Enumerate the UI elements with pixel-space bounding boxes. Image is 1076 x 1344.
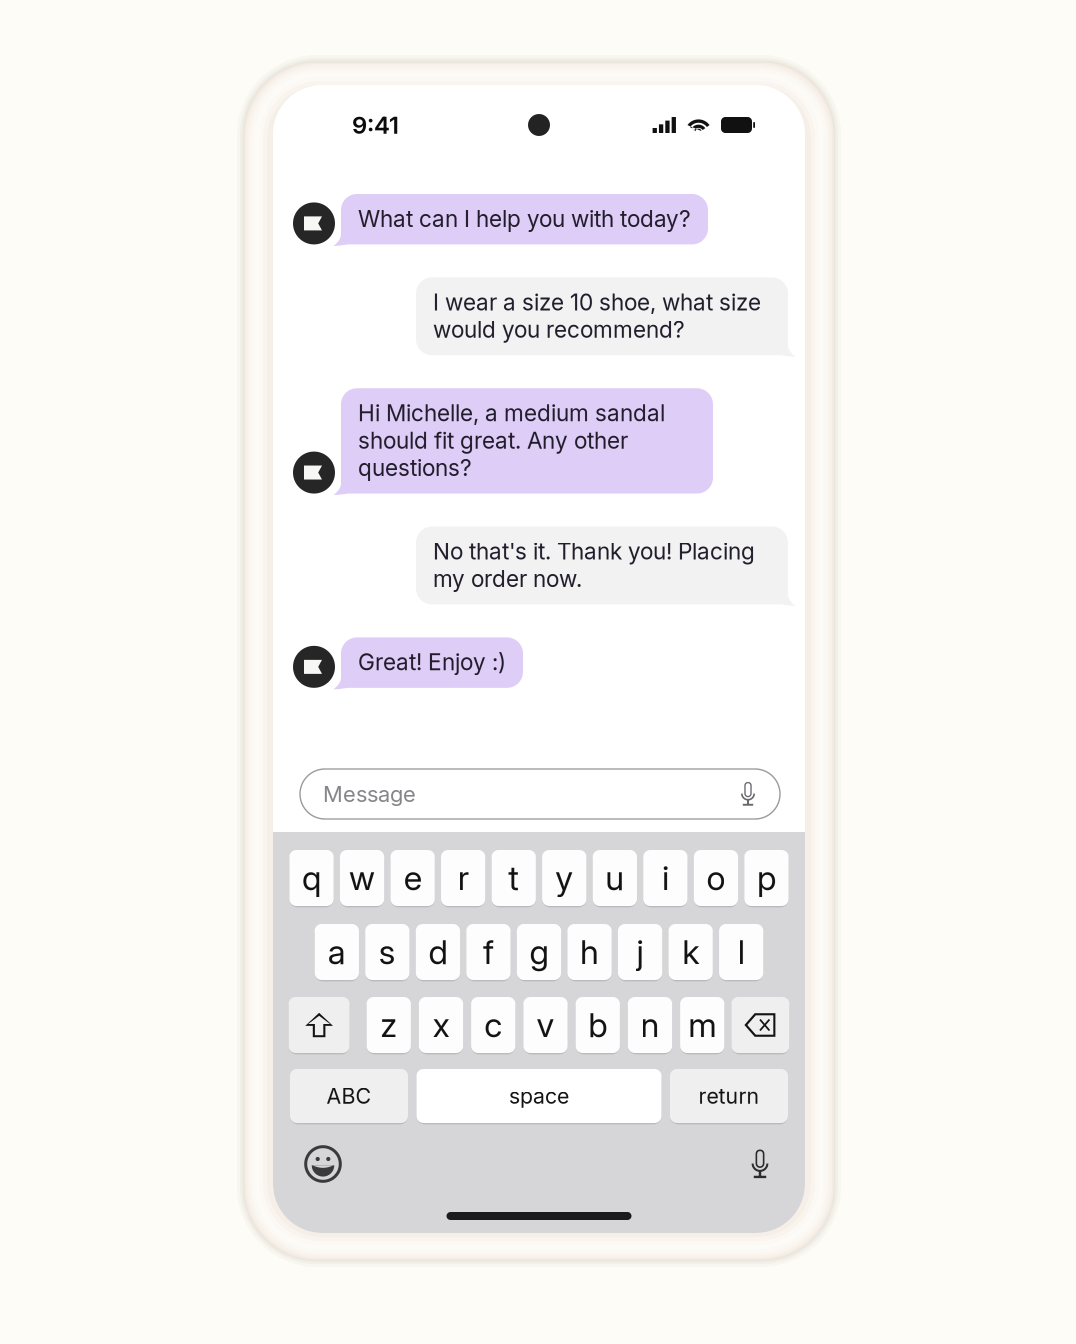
staticText: p <box>757 858 776 898</box>
button[interactable]: d <box>416 924 460 980</box>
staticText: u <box>605 858 624 898</box>
button[interactable]: Backspace <box>731 997 789 1053</box>
staticText: z <box>380 1005 397 1045</box>
staticText: ABC <box>326 1083 371 1109</box>
button[interactable]: s <box>365 924 409 980</box>
staticText: c <box>484 1005 502 1045</box>
staticText: o <box>706 858 725 898</box>
staticText: 9:41 <box>352 110 399 139</box>
button[interactable]: Message <box>300 769 780 819</box>
button[interactable]: t <box>492 850 536 906</box>
button[interactable]: space <box>416 1069 661 1123</box>
button[interactable]: n <box>628 997 672 1053</box>
button[interactable]: y <box>542 850 586 906</box>
button[interactable]: f <box>466 924 511 980</box>
button[interactable]: g <box>517 924 561 980</box>
button[interactable]: c <box>471 997 515 1053</box>
staticText: a <box>328 932 346 972</box>
button[interactable]: z <box>367 997 411 1053</box>
staticText: e <box>404 858 422 898</box>
button[interactable]: return <box>670 1069 788 1123</box>
staticText: q <box>302 858 321 898</box>
button[interactable]: x <box>419 997 463 1053</box>
staticText: s <box>379 932 396 972</box>
button[interactable]: r <box>441 850 485 906</box>
button[interactable]: m <box>680 997 724 1053</box>
staticText: n <box>640 1005 659 1045</box>
staticText: h <box>580 932 599 972</box>
button[interactable]: i <box>643 850 687 906</box>
staticText: space <box>509 1083 569 1109</box>
staticText: f <box>483 932 494 972</box>
staticText: b <box>588 1005 607 1045</box>
staticText: l <box>738 932 745 972</box>
button[interactable]: o <box>694 850 738 906</box>
staticText: Message <box>323 781 416 807</box>
button[interactable]: v <box>523 997 568 1053</box>
button[interactable]: q <box>289 850 334 906</box>
button[interactable]: Shift <box>289 997 350 1053</box>
staticText: I wear a size 10 shoe, what size would y… <box>433 288 761 343</box>
staticText: r <box>458 858 469 898</box>
staticText: g <box>529 932 548 972</box>
staticText: k <box>682 932 699 972</box>
button[interactable]: w <box>340 850 384 906</box>
staticText: d <box>428 932 447 972</box>
staticText: Hi Michelle, a medium sandal should fit … <box>358 399 665 482</box>
button[interactable]: u <box>593 850 637 906</box>
staticText: y <box>555 858 573 898</box>
staticText: j <box>637 932 644 972</box>
button[interactable]: p <box>744 850 789 906</box>
staticText: i <box>662 858 669 898</box>
staticText: No that's it. Thank you! Placing my orde… <box>433 538 755 592</box>
staticText: w <box>349 858 375 898</box>
button[interactable]: h <box>567 924 612 980</box>
staticText: What can I help you with today? <box>358 205 691 232</box>
staticText: Great! Enjoy :) <box>358 648 506 676</box>
staticText: t <box>508 858 519 898</box>
button[interactable]: l <box>719 924 763 980</box>
button[interactable]: a <box>315 924 359 980</box>
button[interactable]: Dictate <box>742 1141 778 1187</box>
button[interactable]: b <box>576 997 620 1053</box>
staticText: v <box>536 1005 554 1045</box>
button[interactable]: e <box>390 850 435 906</box>
button[interactable]: j <box>618 924 662 980</box>
button[interactable]: k <box>668 924 713 980</box>
button[interactable]: ABC <box>290 1069 408 1123</box>
button[interactable]: Emoji keyboard <box>300 1141 346 1187</box>
staticText: m <box>688 1005 716 1045</box>
staticText: return <box>698 1083 759 1109</box>
staticText: x <box>432 1005 449 1045</box>
